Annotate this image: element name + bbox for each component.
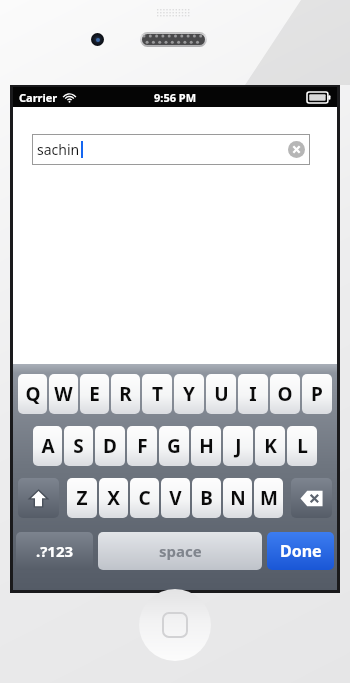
button[interactable]: D bbox=[95, 426, 125, 466]
staticText: J bbox=[235, 433, 242, 459]
staticText: E bbox=[89, 381, 100, 407]
staticText: W bbox=[54, 381, 73, 407]
button[interactable]: U bbox=[206, 374, 236, 414]
button[interactable]: E bbox=[80, 374, 109, 414]
staticText: I bbox=[249, 381, 257, 407]
button[interactable]: Home bbox=[139, 589, 211, 661]
staticText: L bbox=[297, 433, 308, 459]
button[interactable]: H bbox=[191, 426, 221, 466]
button[interactable]: N bbox=[223, 478, 252, 518]
staticText: R bbox=[119, 381, 132, 407]
button[interactable]: W bbox=[49, 374, 78, 414]
button[interactable]: O bbox=[270, 374, 300, 414]
button[interactable]: T bbox=[142, 374, 172, 414]
staticText: space bbox=[159, 541, 202, 561]
staticText: B bbox=[200, 485, 213, 511]
staticText: Z bbox=[76, 485, 88, 511]
staticText: Y bbox=[183, 381, 195, 407]
button[interactable]: B bbox=[192, 478, 221, 518]
staticText: Done bbox=[280, 540, 322, 562]
staticText: H bbox=[199, 433, 214, 459]
button[interactable]: I bbox=[238, 374, 268, 414]
button[interactable]: J bbox=[223, 426, 253, 466]
button[interactable]: K bbox=[255, 426, 285, 466]
staticText: M bbox=[260, 485, 278, 511]
button[interactable]: Z bbox=[67, 478, 97, 518]
staticText: S bbox=[73, 433, 84, 459]
staticText: A bbox=[41, 433, 55, 459]
button[interactable]: Clear text bbox=[288, 141, 305, 158]
button[interactable]: Done bbox=[267, 532, 334, 570]
staticText: Carrier bbox=[19, 90, 58, 105]
button[interactable]: P bbox=[302, 374, 332, 414]
button[interactable]: Backspace bbox=[291, 478, 332, 518]
staticText: T bbox=[152, 381, 163, 407]
button[interactable]: Y bbox=[174, 374, 204, 414]
staticText: K bbox=[264, 433, 277, 459]
staticText: sachin bbox=[37, 140, 80, 159]
button[interactable]: A bbox=[33, 426, 62, 466]
staticText: X bbox=[107, 485, 120, 511]
staticText: N bbox=[230, 485, 246, 511]
staticText: U bbox=[214, 381, 229, 407]
button[interactable]: L bbox=[287, 426, 317, 466]
staticText: Q bbox=[25, 381, 41, 407]
button[interactable]: Shift bbox=[18, 478, 59, 518]
staticText: C bbox=[138, 485, 151, 511]
staticText: D bbox=[103, 433, 117, 459]
button[interactable]: sachin bbox=[37, 134, 305, 165]
button[interactable]: R bbox=[111, 374, 140, 414]
staticText: V bbox=[169, 485, 182, 511]
button[interactable]: V bbox=[161, 478, 190, 518]
button[interactable]: .?123 bbox=[16, 532, 93, 570]
button[interactable]: Q bbox=[18, 374, 47, 414]
button[interactable]: S bbox=[64, 426, 93, 466]
staticText: P bbox=[311, 381, 323, 407]
button[interactable]: X bbox=[99, 478, 128, 518]
button[interactable]: space bbox=[98, 532, 262, 570]
button[interactable]: C bbox=[130, 478, 159, 518]
staticText: F bbox=[137, 433, 148, 459]
button[interactable]: F bbox=[127, 426, 157, 466]
staticText: G bbox=[167, 433, 181, 459]
button[interactable]: G bbox=[159, 426, 189, 466]
staticText: .?123 bbox=[36, 541, 74, 561]
button[interactable]: M bbox=[254, 478, 283, 518]
staticText: 9:56 PM bbox=[154, 90, 197, 105]
staticText: O bbox=[277, 381, 293, 407]
